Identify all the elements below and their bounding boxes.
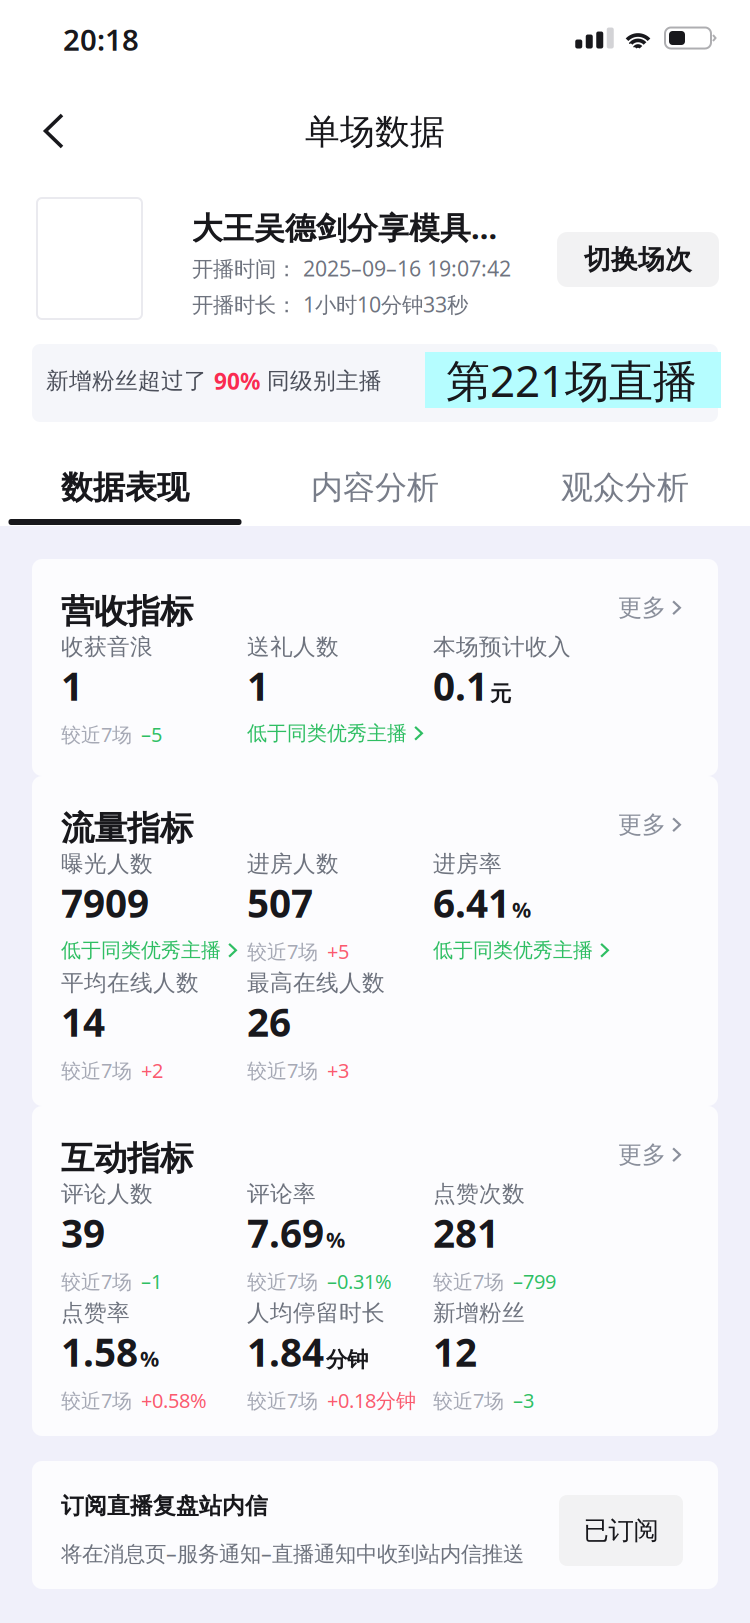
staticText: 12 <box>433 1326 477 1377</box>
staticText: % <box>326 1225 345 1253</box>
button[interactable]: 更多 <box>618 1138 681 1169</box>
staticText: 元 <box>490 680 511 707</box>
staticText: 互动指标 <box>61 1138 193 1179</box>
staticText: –1 <box>141 1268 162 1295</box>
staticText: 数据表现 <box>61 468 189 507</box>
button[interactable]: Back <box>22 99 86 163</box>
staticText: 281 <box>433 1207 499 1258</box>
button[interactable]: 更多 <box>618 591 681 622</box>
staticText: –5 <box>141 721 162 748</box>
button[interactable]: 内容分析 <box>250 422 500 526</box>
button[interactable]: 数据表现 <box>0 422 250 526</box>
staticText: 更多 <box>618 810 666 839</box>
staticText: 较近7场 <box>247 1057 318 1084</box>
staticText: 1 <box>61 660 83 711</box>
staticText: 更多 <box>618 593 666 622</box>
staticText: 较近7场 <box>61 1268 132 1295</box>
staticText: 评论率 <box>247 1180 316 1208</box>
staticText: +3 <box>327 1057 349 1084</box>
staticText: 低于同类优秀主播 <box>247 721 407 746</box>
staticText: 进房人数 <box>247 850 339 878</box>
staticText: 90% <box>214 366 260 396</box>
staticText: % <box>140 1344 159 1372</box>
staticText: 进房率 <box>433 850 502 878</box>
staticText: 7909 <box>61 877 149 928</box>
staticText: 将在消息页–服务通知–直播通知中收到站内信推送 <box>61 1539 524 1567</box>
staticText: –799 <box>513 1268 556 1295</box>
staticText: 低于同类优秀主播 <box>61 938 221 963</box>
staticText: +0.58% <box>141 1387 207 1414</box>
staticText: 切换场次 <box>584 243 692 276</box>
staticText: 低于同类优秀主播 <box>433 938 593 963</box>
staticText: 营收指标 <box>61 591 193 632</box>
staticText: –3 <box>513 1387 534 1414</box>
staticText: 平均在线人数 <box>61 969 199 997</box>
staticText: 507 <box>247 877 313 928</box>
staticText: 评论人数 <box>61 1180 153 1208</box>
staticText: 分钟 <box>326 1346 368 1373</box>
staticText: 较近7场 <box>247 1268 318 1295</box>
staticText: 人均停留时长 <box>247 1299 385 1327</box>
staticText: 开播时长： 1小时10分钟33秒 <box>192 290 468 318</box>
staticText: 较近7场 <box>247 1387 318 1414</box>
staticText: 14 <box>61 996 105 1047</box>
staticText: 已订阅 <box>583 1515 658 1546</box>
button[interactable]: 观众分析 <box>500 422 750 526</box>
staticText: –0.31% <box>327 1268 392 1295</box>
staticText: 7.69 <box>247 1207 324 1258</box>
staticText: 同级别主播 <box>260 367 382 395</box>
staticText: 较近7场 <box>61 1057 132 1084</box>
staticText: 观众分析 <box>561 468 689 507</box>
staticText: 单场数据 <box>305 111 445 153</box>
staticText: 较近7场 <box>433 1268 504 1295</box>
staticText: 点赞率 <box>61 1299 130 1327</box>
staticText: +2 <box>141 1057 163 1084</box>
staticText: 第221场直播 <box>446 351 697 409</box>
staticText: +5 <box>327 938 349 965</box>
staticText: 流量指标 <box>61 808 193 849</box>
staticText: 新增粉丝超过了 <box>46 367 214 395</box>
staticText: +0.18分钟 <box>327 1387 416 1414</box>
staticText: 较近7场 <box>433 1387 504 1414</box>
staticText: % <box>512 895 531 923</box>
staticText: 较近7场 <box>61 721 132 748</box>
staticText: 最高在线人数 <box>247 969 385 997</box>
staticText: 1.58 <box>61 1326 138 1377</box>
staticText: 39 <box>61 1207 105 1258</box>
staticText: 较近7场 <box>247 938 318 965</box>
staticText: 新增粉丝 <box>433 1299 525 1327</box>
staticText: 较近7场 <box>61 1387 132 1414</box>
staticText: 1 <box>247 660 269 711</box>
button[interactable]: 更多 <box>618 808 681 839</box>
staticText: 0.1 <box>433 660 488 711</box>
staticText: 1.84 <box>247 1326 324 1377</box>
staticText: 内容分析 <box>311 468 439 507</box>
staticText: 开播时间： 2025–09–16 19:07:42 <box>192 254 511 282</box>
staticText: 26 <box>247 996 291 1047</box>
button[interactable]: 已订阅 <box>559 1495 683 1566</box>
staticText: 订阅直播复盘站内信 <box>61 1492 268 1520</box>
staticText: 更多 <box>618 1140 666 1169</box>
staticText: 收获音浪 <box>61 633 153 661</box>
staticText: 曝光人数 <box>61 850 153 878</box>
staticText: 点赞次数 <box>433 1180 525 1208</box>
staticText: 大王吴德剑分享模具… <box>192 207 497 248</box>
staticText: 本场预计收入 <box>433 633 571 661</box>
staticText: 6.41 <box>433 877 510 928</box>
staticText: 送礼人数 <box>247 633 339 661</box>
button[interactable]: 切换场次 <box>557 232 719 287</box>
staticText: 20:18 <box>63 20 139 59</box>
